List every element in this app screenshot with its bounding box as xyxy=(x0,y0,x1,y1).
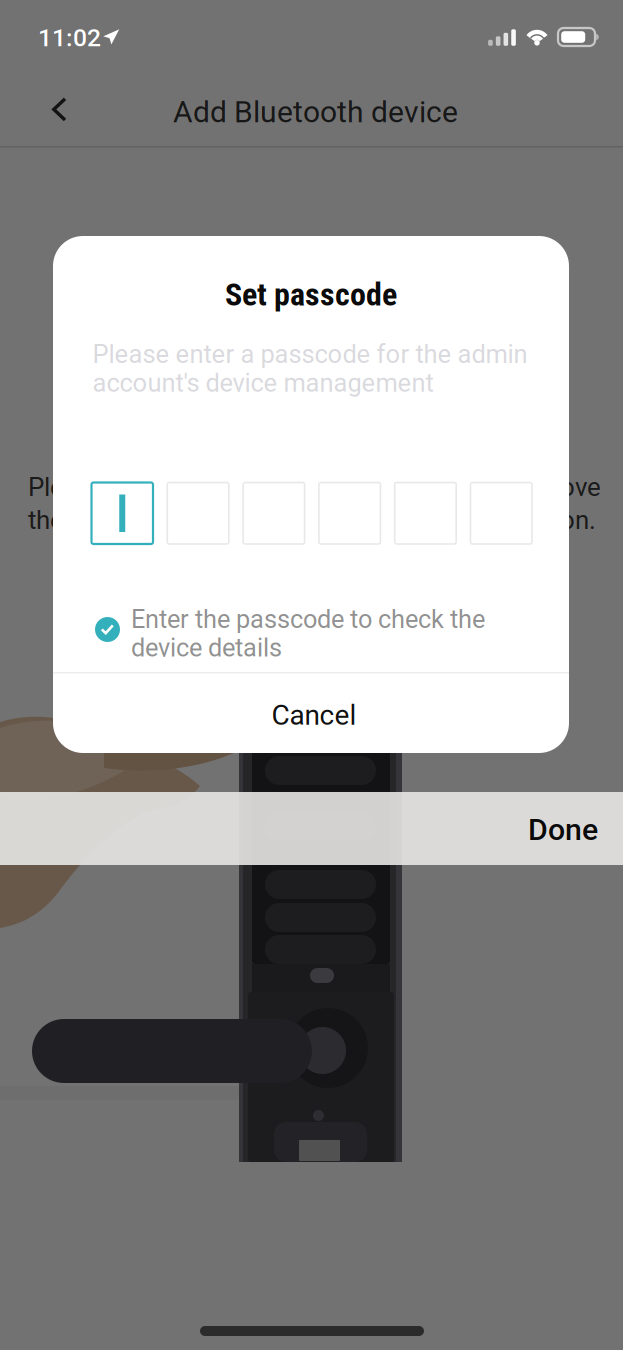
staticText: Done xyxy=(528,812,598,847)
staticText: the battery insulation sheet before the … xyxy=(28,505,596,535)
staticText: Add Bluetooth device xyxy=(173,94,458,130)
staticText: account's device management xyxy=(92,368,433,398)
staticText: device details xyxy=(131,633,282,663)
button[interactable]: Cancel xyxy=(53,672,569,753)
staticText: 11:02 xyxy=(38,23,101,52)
staticText: Enter the passcode to check the xyxy=(131,604,485,634)
button[interactable]: Back xyxy=(28,76,94,142)
staticText: Please enter a passcode for the admin xyxy=(92,339,527,369)
staticText: Set passcode xyxy=(225,276,397,313)
staticText: Please aim at the QR code on the lock an… xyxy=(28,472,601,502)
button[interactable]: Done xyxy=(0,792,623,865)
staticText: Cancel xyxy=(271,699,356,732)
